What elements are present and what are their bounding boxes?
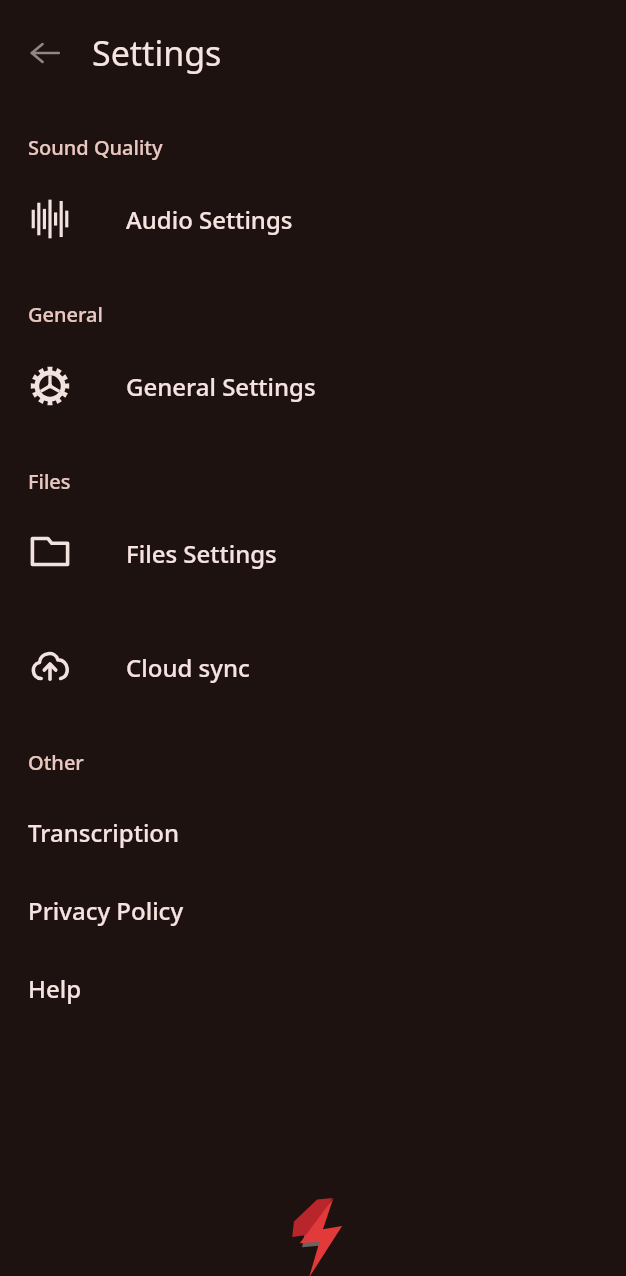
staticText: Sound Quality xyxy=(28,134,163,161)
button[interactable]: Cloud sync xyxy=(0,641,626,693)
button[interactable]: Transcription xyxy=(0,808,626,856)
button[interactable]: Back xyxy=(14,22,76,84)
staticText: General xyxy=(28,301,103,328)
staticText: Audio Settings xyxy=(126,203,293,236)
staticText: Files xyxy=(28,468,71,495)
staticText: Cloud sync xyxy=(126,651,250,684)
staticText: Transcription xyxy=(28,816,180,849)
button[interactable]: Privacy Policy xyxy=(0,886,626,934)
staticText: Privacy Policy xyxy=(28,894,184,927)
staticText: Files Settings xyxy=(126,537,277,570)
button[interactable]: Files Settings xyxy=(0,527,626,579)
button[interactable]: General Settings xyxy=(0,360,626,412)
button[interactable]: Audio Settings xyxy=(0,193,626,245)
staticText: Help xyxy=(28,972,82,1005)
button[interactable]: Help xyxy=(0,964,626,1012)
staticText: Other xyxy=(28,749,84,776)
staticText: General Settings xyxy=(126,370,316,403)
staticText: Settings xyxy=(92,30,222,76)
